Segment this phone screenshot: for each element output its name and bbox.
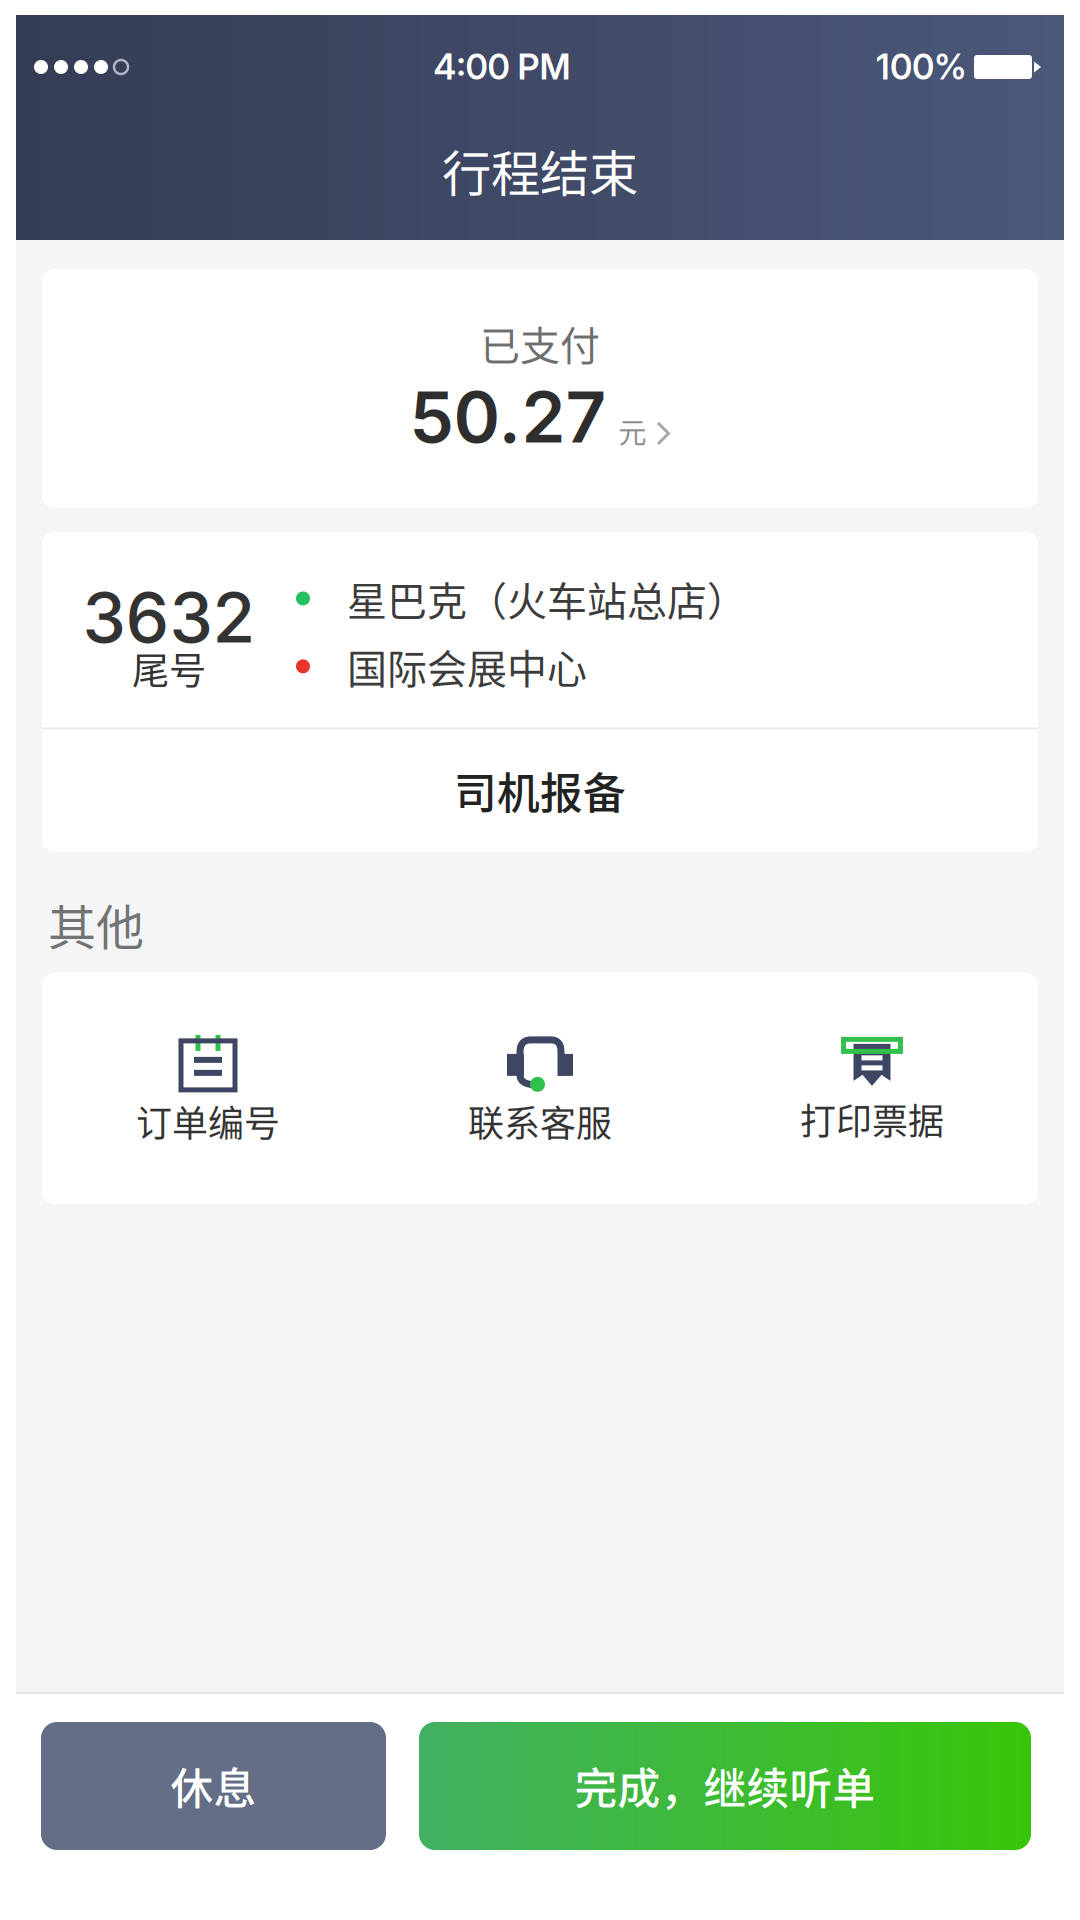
button[interactable]: 已支付 xyxy=(42,269,1038,507)
staticText: 4:00 PM xyxy=(433,46,570,88)
button[interactable]: 订单编号 xyxy=(42,973,374,1204)
button[interactable]: 联系客服 xyxy=(374,973,706,1204)
staticText: 行程结束 xyxy=(442,135,638,206)
staticText: 其他 xyxy=(48,889,144,959)
staticText: 打印票据 xyxy=(800,1093,944,1145)
staticText: 完成，继续听单 xyxy=(574,1755,875,1817)
staticText: 元 xyxy=(606,411,646,451)
staticText: 订单编号 xyxy=(136,1095,280,1147)
button[interactable]: 完成，继续听单 xyxy=(419,1722,1031,1850)
staticText: 尾号 xyxy=(132,641,206,695)
button[interactable]: 休息 xyxy=(41,1722,386,1850)
button[interactable]: 司机报备 xyxy=(42,729,1038,851)
staticText: 已支付 xyxy=(480,314,600,372)
staticText: 联系客服 xyxy=(468,1095,612,1147)
button[interactable]: 打印票据 xyxy=(706,975,1038,1202)
staticText: 3632 xyxy=(82,575,255,659)
staticText: 50.27 xyxy=(409,374,606,459)
staticText: 司机报备 xyxy=(454,759,626,821)
staticText: 星巴克（火车站总店） xyxy=(347,569,747,627)
staticText: 休息 xyxy=(170,1755,256,1817)
staticText: 100% xyxy=(876,46,967,88)
staticText: 国际会展中心 xyxy=(347,637,587,695)
